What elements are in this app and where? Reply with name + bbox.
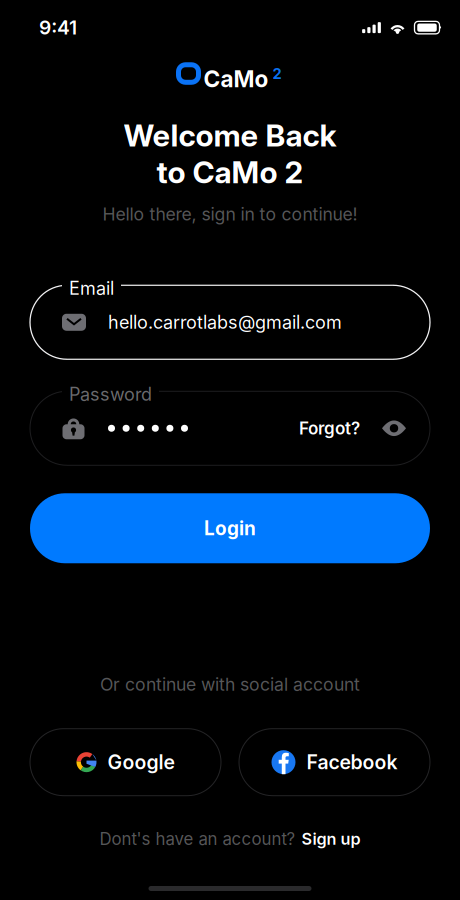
button[interactable]: Forgot? bbox=[299, 418, 360, 438]
button[interactable]: Sign up bbox=[301, 829, 360, 849]
staticText: Password bbox=[69, 383, 152, 405]
button[interactable]: Google bbox=[30, 729, 221, 796]
button[interactable]: Facebook bbox=[239, 729, 430, 796]
staticText: Email bbox=[69, 277, 114, 299]
staticText: 2 bbox=[272, 65, 281, 82]
staticText: Sign up bbox=[301, 829, 360, 849]
staticText: Login bbox=[204, 517, 256, 540]
staticText: Google bbox=[107, 750, 174, 774]
staticText: Dont's have an account? bbox=[99, 829, 295, 849]
staticText: hello.carrotlabs@gmail.com bbox=[108, 311, 342, 333]
staticText: Welcome Back bbox=[123, 117, 336, 154]
staticText: CaMo bbox=[203, 65, 268, 93]
button[interactable]: Login bbox=[30, 493, 430, 563]
staticText: 9:41 bbox=[39, 16, 77, 39]
button[interactable]: Show password bbox=[382, 419, 406, 437]
staticText: Or continue with social account bbox=[100, 674, 360, 695]
staticText: Forgot? bbox=[299, 418, 360, 438]
staticText: Facebook bbox=[306, 750, 397, 774]
staticText: Hello there, sign in to continue! bbox=[102, 203, 357, 225]
staticText: to CaMo 2 bbox=[156, 154, 303, 190]
